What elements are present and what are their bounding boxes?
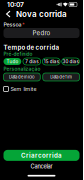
staticText: Criar corrida — [21, 152, 62, 159]
staticText: Data de início — [9, 74, 35, 80]
button[interactable]: Data de início — [3, 73, 40, 81]
button[interactable]: Data de fim — [43, 73, 80, 81]
staticText: Data de fim — [50, 74, 72, 80]
button[interactable]: Tudo — [3, 58, 21, 65]
button[interactable]: Criar corrida — [3, 150, 79, 161]
staticText: 7 dias — [25, 59, 38, 64]
staticText: Pessoa — [3, 21, 21, 28]
staticText: * — [22, 21, 25, 28]
button[interactable]: 30 dias — [62, 58, 79, 65]
staticText: Pré-definido — [3, 51, 32, 57]
staticText: Cancelar — [30, 163, 52, 170]
button[interactable]: Back — [4, 9, 13, 19]
staticText: Tudo — [6, 59, 18, 64]
staticText: 15 dias — [44, 59, 59, 64]
staticText: 10:07 — [7, 0, 24, 9]
staticText: Tempo de corrida — [3, 44, 59, 51]
staticText: Sem limite — [10, 86, 36, 92]
button[interactable]: Cancelar — [0, 162, 83, 171]
button[interactable]: Sem limite — [3, 86, 83, 92]
button[interactable]: Pedro — [3, 28, 79, 38]
staticText: 30 dias — [63, 59, 79, 64]
button[interactable]: 15 dias — [42, 58, 60, 65]
staticText: Personalização — [3, 66, 40, 72]
staticText: Pedro — [32, 29, 50, 37]
staticText: Nova corrida — [16, 9, 67, 19]
button[interactable]: 7 dias — [23, 58, 41, 65]
